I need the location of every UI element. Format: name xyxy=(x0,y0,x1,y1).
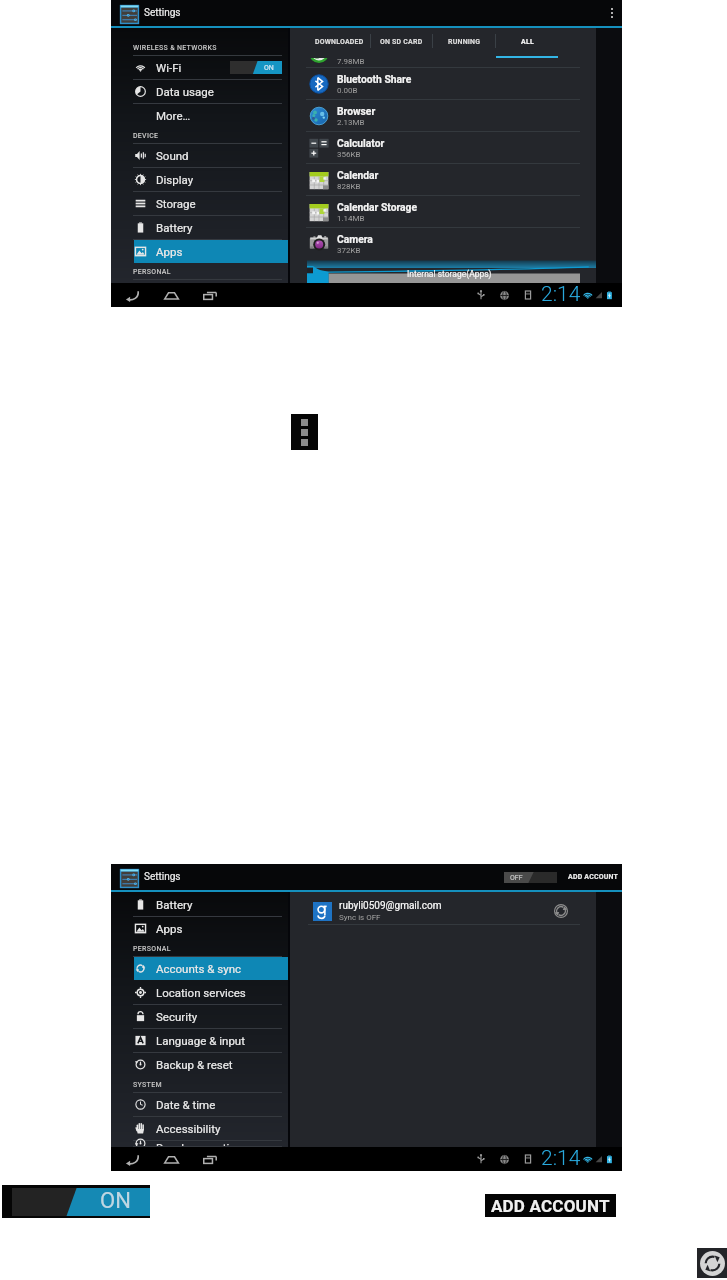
staticText: Accounts & sync xyxy=(156,962,242,975)
staticText: Date & time xyxy=(156,1098,216,1111)
staticText: Bluetooth Share xyxy=(337,73,412,85)
staticText: Location services xyxy=(156,986,246,999)
button[interactable]: rubyli0509@gmail.com xyxy=(313,898,568,924)
staticText: Battery xyxy=(156,221,193,234)
button[interactable]: Home xyxy=(159,283,183,307)
staticText: Wi-Fi xyxy=(156,61,182,74)
staticText: 0.00B xyxy=(337,86,358,95)
staticText: 372KB xyxy=(337,246,361,255)
staticText: 2:14 xyxy=(541,282,581,306)
staticText: SYSTEM xyxy=(133,1081,162,1089)
staticText: DOWNLOADED xyxy=(315,38,364,46)
button[interactable]: Home xyxy=(159,1147,183,1171)
button[interactable]: More options xyxy=(291,414,318,450)
staticText: ON SD CARD xyxy=(380,38,423,46)
button[interactable]: Date & time xyxy=(111,1093,288,1116)
button[interactable]: Back xyxy=(120,1147,144,1171)
staticText: Calculator xyxy=(337,137,385,149)
staticText: Storage xyxy=(156,197,196,210)
staticText: Browser xyxy=(337,105,376,117)
button[interactable]: Calendar Storage xyxy=(309,196,596,227)
staticText: Calendar xyxy=(337,169,379,181)
button[interactable]: Display xyxy=(111,168,288,191)
staticText: Apps xyxy=(156,922,183,935)
button[interactable]: Accounts & sync xyxy=(134,957,288,980)
staticText: Language & input xyxy=(156,1034,245,1047)
button[interactable]: Bluetooth Share xyxy=(309,68,596,99)
staticText: 7.98MB xyxy=(337,58,365,66)
button[interactable]: Language & input xyxy=(111,1029,288,1052)
staticText: rubyli0509@gmail.com xyxy=(339,900,442,912)
staticText: Battery xyxy=(156,898,193,911)
button[interactable]: Sync now xyxy=(554,904,568,918)
button[interactable]: More… xyxy=(111,104,288,127)
button[interactable]: More options xyxy=(601,0,622,26)
button[interactable]: Recent apps xyxy=(198,283,222,307)
staticText: DEVICE xyxy=(133,132,159,140)
button[interactable]: ON xyxy=(2,1185,150,1218)
button[interactable]: Battery xyxy=(111,216,288,239)
button[interactable]: Recent apps xyxy=(198,1147,222,1171)
button[interactable]: Calendar xyxy=(309,164,596,195)
staticText: ADD ACCOUNT xyxy=(568,873,619,881)
button[interactable]: Developer options xyxy=(111,1141,288,1146)
button[interactable]: Wi-Fi xyxy=(111,56,288,79)
button[interactable]: OFF xyxy=(504,872,557,883)
staticText: Developer options xyxy=(156,1141,249,1146)
staticText: 356KB xyxy=(337,150,361,159)
button[interactable]: ON SD CARD xyxy=(371,28,432,58)
staticText: OFF xyxy=(510,874,523,882)
staticText: Sync is OFF xyxy=(339,913,381,922)
staticText: RUNNING xyxy=(448,38,481,46)
staticText: Calendar Storage xyxy=(337,201,418,213)
staticText: PERSONAL xyxy=(133,945,171,953)
staticText: ON xyxy=(100,1188,131,1214)
staticText: Data usage xyxy=(156,85,214,98)
staticText: Sound xyxy=(156,149,189,162)
button[interactable]: Battery xyxy=(111,893,288,916)
staticText: Settings xyxy=(144,871,181,883)
staticText: Security xyxy=(156,1010,198,1023)
button[interactable]: Data usage xyxy=(111,80,288,103)
button[interactable]: Location services xyxy=(111,981,288,1004)
button[interactable]: Sound xyxy=(111,144,288,167)
button[interactable]: 7.98MB xyxy=(290,58,596,67)
staticText: 1.14MB xyxy=(337,214,365,223)
staticText: Backup & reset xyxy=(156,1058,233,1071)
button[interactable]: ADD ACCOUNT xyxy=(485,1194,616,1217)
button[interactable]: ON xyxy=(230,61,282,74)
button[interactable]: Backup & reset xyxy=(111,1053,288,1076)
staticText: PERSONAL xyxy=(133,268,171,276)
button[interactable]: DOWNLOADED xyxy=(309,28,370,58)
button[interactable]: Calculator xyxy=(309,132,596,163)
button[interactable]: RUNNING xyxy=(433,28,495,58)
staticText: More… xyxy=(156,109,191,122)
staticText: Apps xyxy=(156,245,183,258)
button[interactable]: ALL xyxy=(496,28,558,58)
staticText: WIRELESS & NETWORKS xyxy=(133,44,217,52)
button[interactable]: Browser xyxy=(309,100,596,131)
button[interactable]: Apps xyxy=(111,917,288,940)
staticText: Internal storage(Apps) xyxy=(407,269,492,279)
button[interactable]: Back xyxy=(120,283,144,307)
button[interactable]: Sync now xyxy=(697,1248,727,1278)
button[interactable]: Storage xyxy=(111,192,288,215)
button[interactable]: Apps xyxy=(134,240,288,263)
staticText: 828KB xyxy=(337,182,361,191)
staticText: Accessibility xyxy=(156,1122,221,1135)
button[interactable]: ADD ACCOUNT xyxy=(565,868,622,886)
staticText: Settings xyxy=(144,7,181,19)
button[interactable]: Camera xyxy=(309,228,596,259)
staticText: ALL xyxy=(521,38,534,46)
staticText: 2.13MB xyxy=(337,118,365,127)
staticText: Display xyxy=(156,173,194,186)
button[interactable]: Accessibility xyxy=(111,1117,288,1140)
staticText: 2:14 xyxy=(541,1146,581,1170)
button[interactable]: Security xyxy=(111,1005,288,1028)
staticText: ADD ACCOUNT xyxy=(491,1196,610,1216)
staticText: ON xyxy=(264,64,274,72)
staticText: Camera xyxy=(337,233,373,245)
